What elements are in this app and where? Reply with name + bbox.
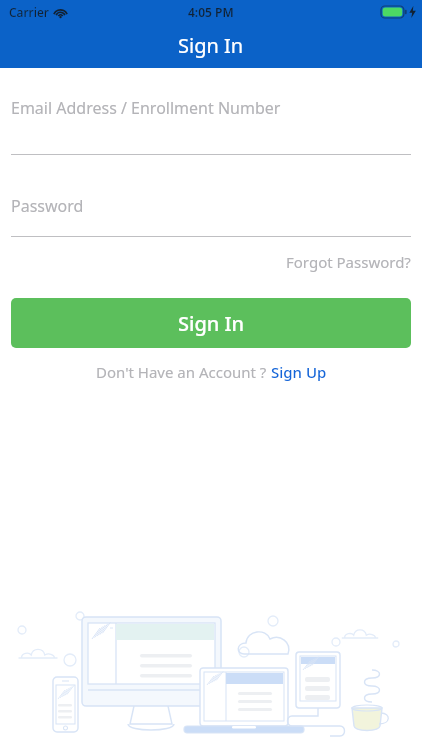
staticText: Forgot Password?	[286, 252, 411, 272]
button[interactable]: Password	[11, 181, 411, 237]
button[interactable]: Forgot Password?	[286, 248, 411, 276]
staticText: 4:05 PM	[188, 4, 234, 20]
button[interactable]: Sign Up	[271, 362, 327, 382]
staticText: Password	[11, 195, 84, 217]
button[interactable]: Sign In	[11, 298, 411, 348]
staticText: Sign In	[178, 310, 245, 337]
button[interactable]: Email Address / Enrollment Number	[11, 68, 411, 155]
staticText: Carrier	[9, 4, 49, 20]
staticText: Email Address / Enrollment Number	[11, 97, 281, 119]
staticText: Sign Up	[271, 362, 327, 382]
staticText: Sign In	[178, 32, 244, 59]
staticText: Don't Have an Account ?	[96, 362, 271, 382]
